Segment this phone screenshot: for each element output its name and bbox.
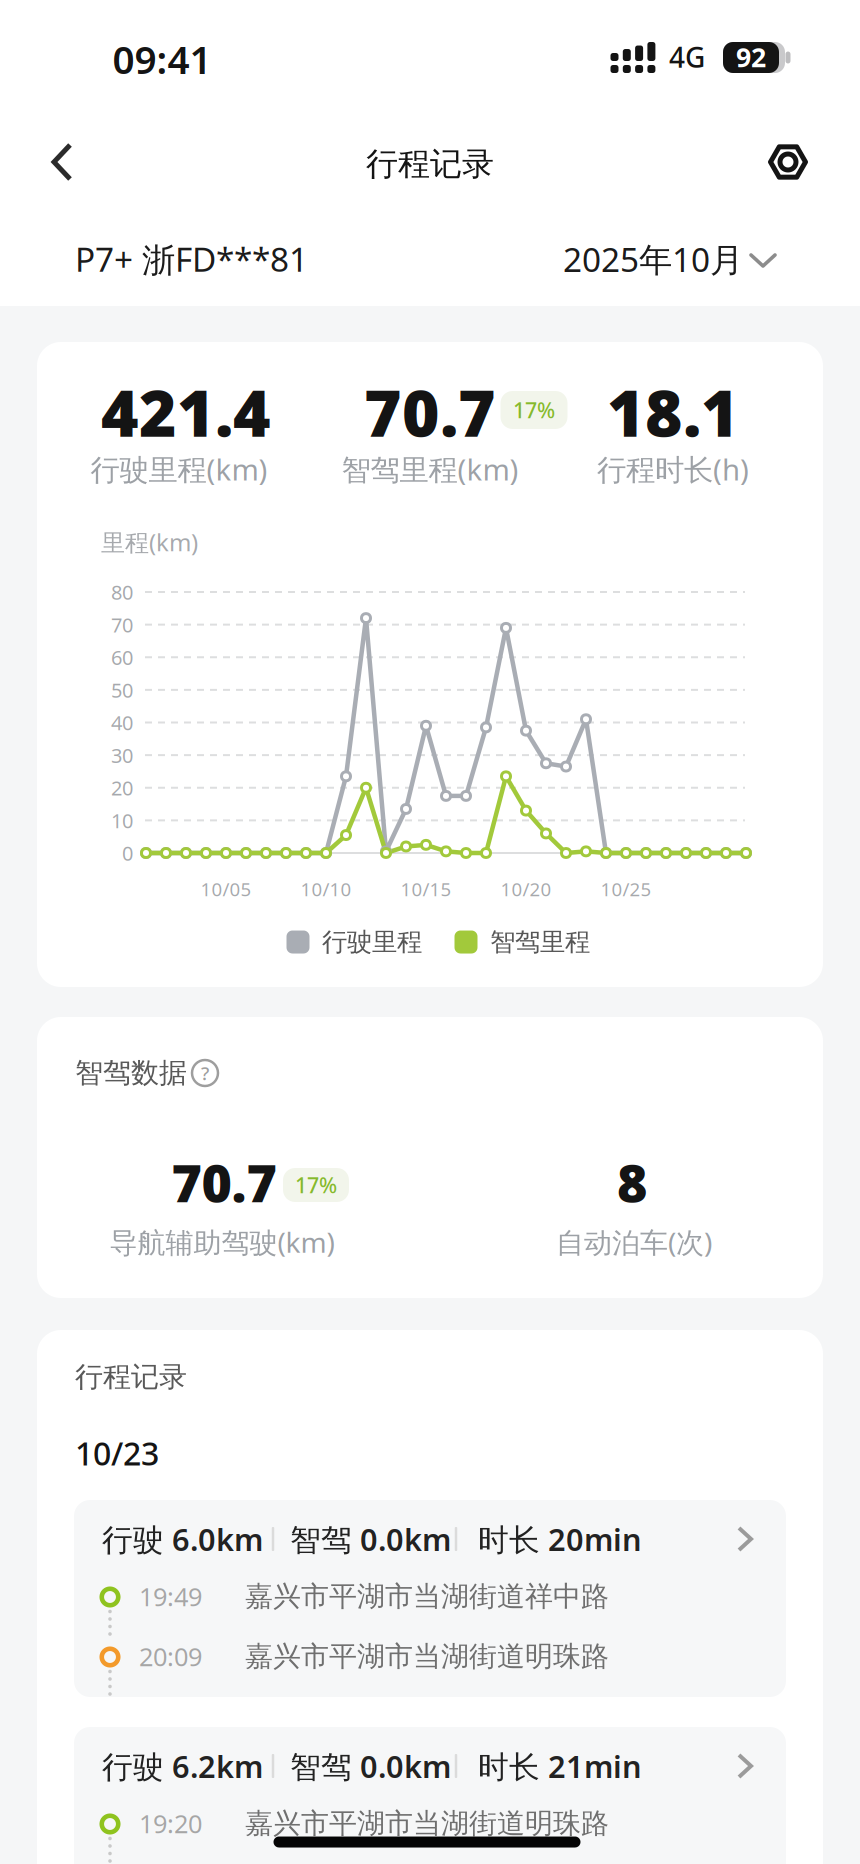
- staticText: 嘉兴市平湖市当湖街道明珠路: [245, 1639, 609, 1674]
- staticText: 行驶 6.0km: [102, 1519, 263, 1559]
- staticText: 0: [122, 840, 133, 866]
- staticText: 09:41: [112, 33, 211, 85]
- staticText: 10/25: [600, 877, 651, 901]
- staticText: 导航辅助驾驶(km): [109, 1223, 334, 1261]
- staticText: 70.7: [364, 369, 496, 454]
- staticText: P7+ 浙FD***81: [75, 237, 308, 281]
- staticText: 30: [111, 742, 133, 768]
- staticText: 92: [736, 39, 766, 75]
- staticText: 行程记录: [366, 144, 494, 184]
- staticText: 10/10: [300, 877, 351, 901]
- staticText: 行程记录: [75, 1360, 187, 1394]
- staticText: 10/15: [400, 877, 451, 901]
- staticText: 50: [111, 677, 133, 703]
- staticText: 70: [111, 611, 133, 638]
- staticText: 自动泊车(次): [556, 1223, 712, 1261]
- button[interactable]: Settings: [0, 0, 860, 1864]
- staticText: 20:09: [139, 1640, 202, 1673]
- button[interactable]: Back: [0, 0, 860, 1864]
- staticText: 行驶里程(km): [90, 449, 267, 488]
- staticText: 行驶里程: [322, 926, 422, 957]
- staticText: 行程时长(h): [597, 449, 749, 488]
- staticText: 8: [617, 1147, 647, 1217]
- staticText: 智驾数据: [75, 1056, 187, 1090]
- staticText: 10/20: [500, 877, 551, 901]
- staticText: 70.7: [171, 1147, 276, 1217]
- button[interactable]: 行驶 6.2km: [0, 0, 860, 1864]
- staticText: 421.4: [101, 369, 271, 454]
- staticText: 17%: [513, 396, 555, 424]
- staticText: 嘉兴市平湖市当湖街道祥中路: [245, 1579, 609, 1614]
- staticText: 60: [111, 644, 133, 671]
- staticText: 10: [111, 807, 133, 834]
- staticText: 18.1: [607, 369, 739, 454]
- staticText: 时长 20min: [478, 1519, 642, 1559]
- staticText: 里程(km): [101, 526, 198, 558]
- staticText: 智驾 0.0km: [290, 1519, 451, 1559]
- staticText: 10/05: [200, 877, 251, 901]
- button[interactable]: 行驶 6.0km: [0, 0, 860, 1864]
- staticText: 17%: [295, 1171, 337, 1199]
- button[interactable]: About smart driving data: [0, 0, 860, 1864]
- staticText: 19:49: [139, 1580, 202, 1613]
- staticText: 19:20: [139, 1807, 202, 1840]
- staticText: 智驾里程: [490, 926, 590, 957]
- staticText: 10/23: [75, 1432, 159, 1474]
- staticText: 嘉兴市平湖市当湖街道明珠路: [245, 1806, 609, 1841]
- staticText: 智驾里程(km): [341, 449, 518, 488]
- staticText: 4G: [669, 38, 705, 76]
- staticText: 智驾 0.0km: [290, 1746, 451, 1786]
- staticText: 时长 21min: [478, 1746, 642, 1786]
- staticText: ?: [201, 1061, 209, 1085]
- staticText: 40: [111, 709, 133, 736]
- staticText: 行驶 6.2km: [102, 1746, 263, 1786]
- button[interactable]: Select month: [0, 0, 860, 1864]
- staticText: 20: [111, 774, 133, 801]
- staticText: 80: [111, 579, 133, 605]
- staticText: 2025年10月: [563, 237, 743, 281]
